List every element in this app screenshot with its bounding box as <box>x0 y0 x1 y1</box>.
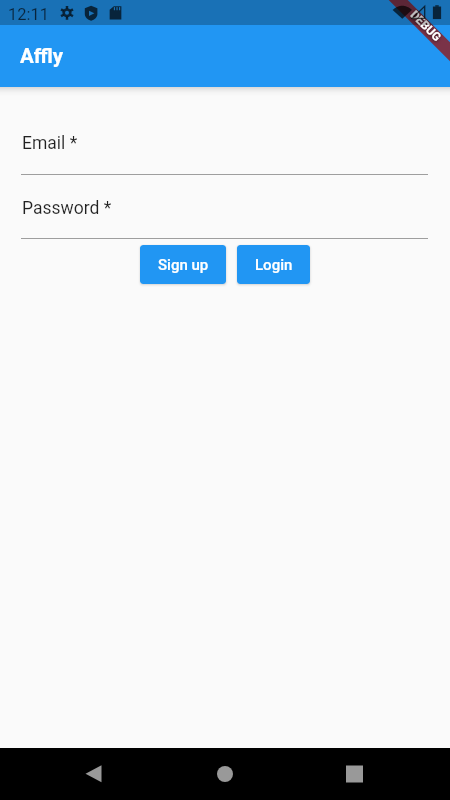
staticText: DEBUG <box>408 8 444 44</box>
staticText: 12:11 <box>8 5 50 24</box>
staticText: Email * <box>22 133 78 154</box>
staticText: Affly <box>20 44 64 68</box>
button[interactable]: Login <box>237 245 310 284</box>
button[interactable]: Sign up <box>140 245 226 284</box>
staticText: Sign up <box>158 256 209 274</box>
staticText: Password * <box>22 198 112 219</box>
button[interactable]: Recent apps <box>333 752 377 796</box>
button[interactable]: Home <box>203 752 247 796</box>
button[interactable]: Back <box>71 752 115 796</box>
staticText: Login <box>255 256 293 274</box>
